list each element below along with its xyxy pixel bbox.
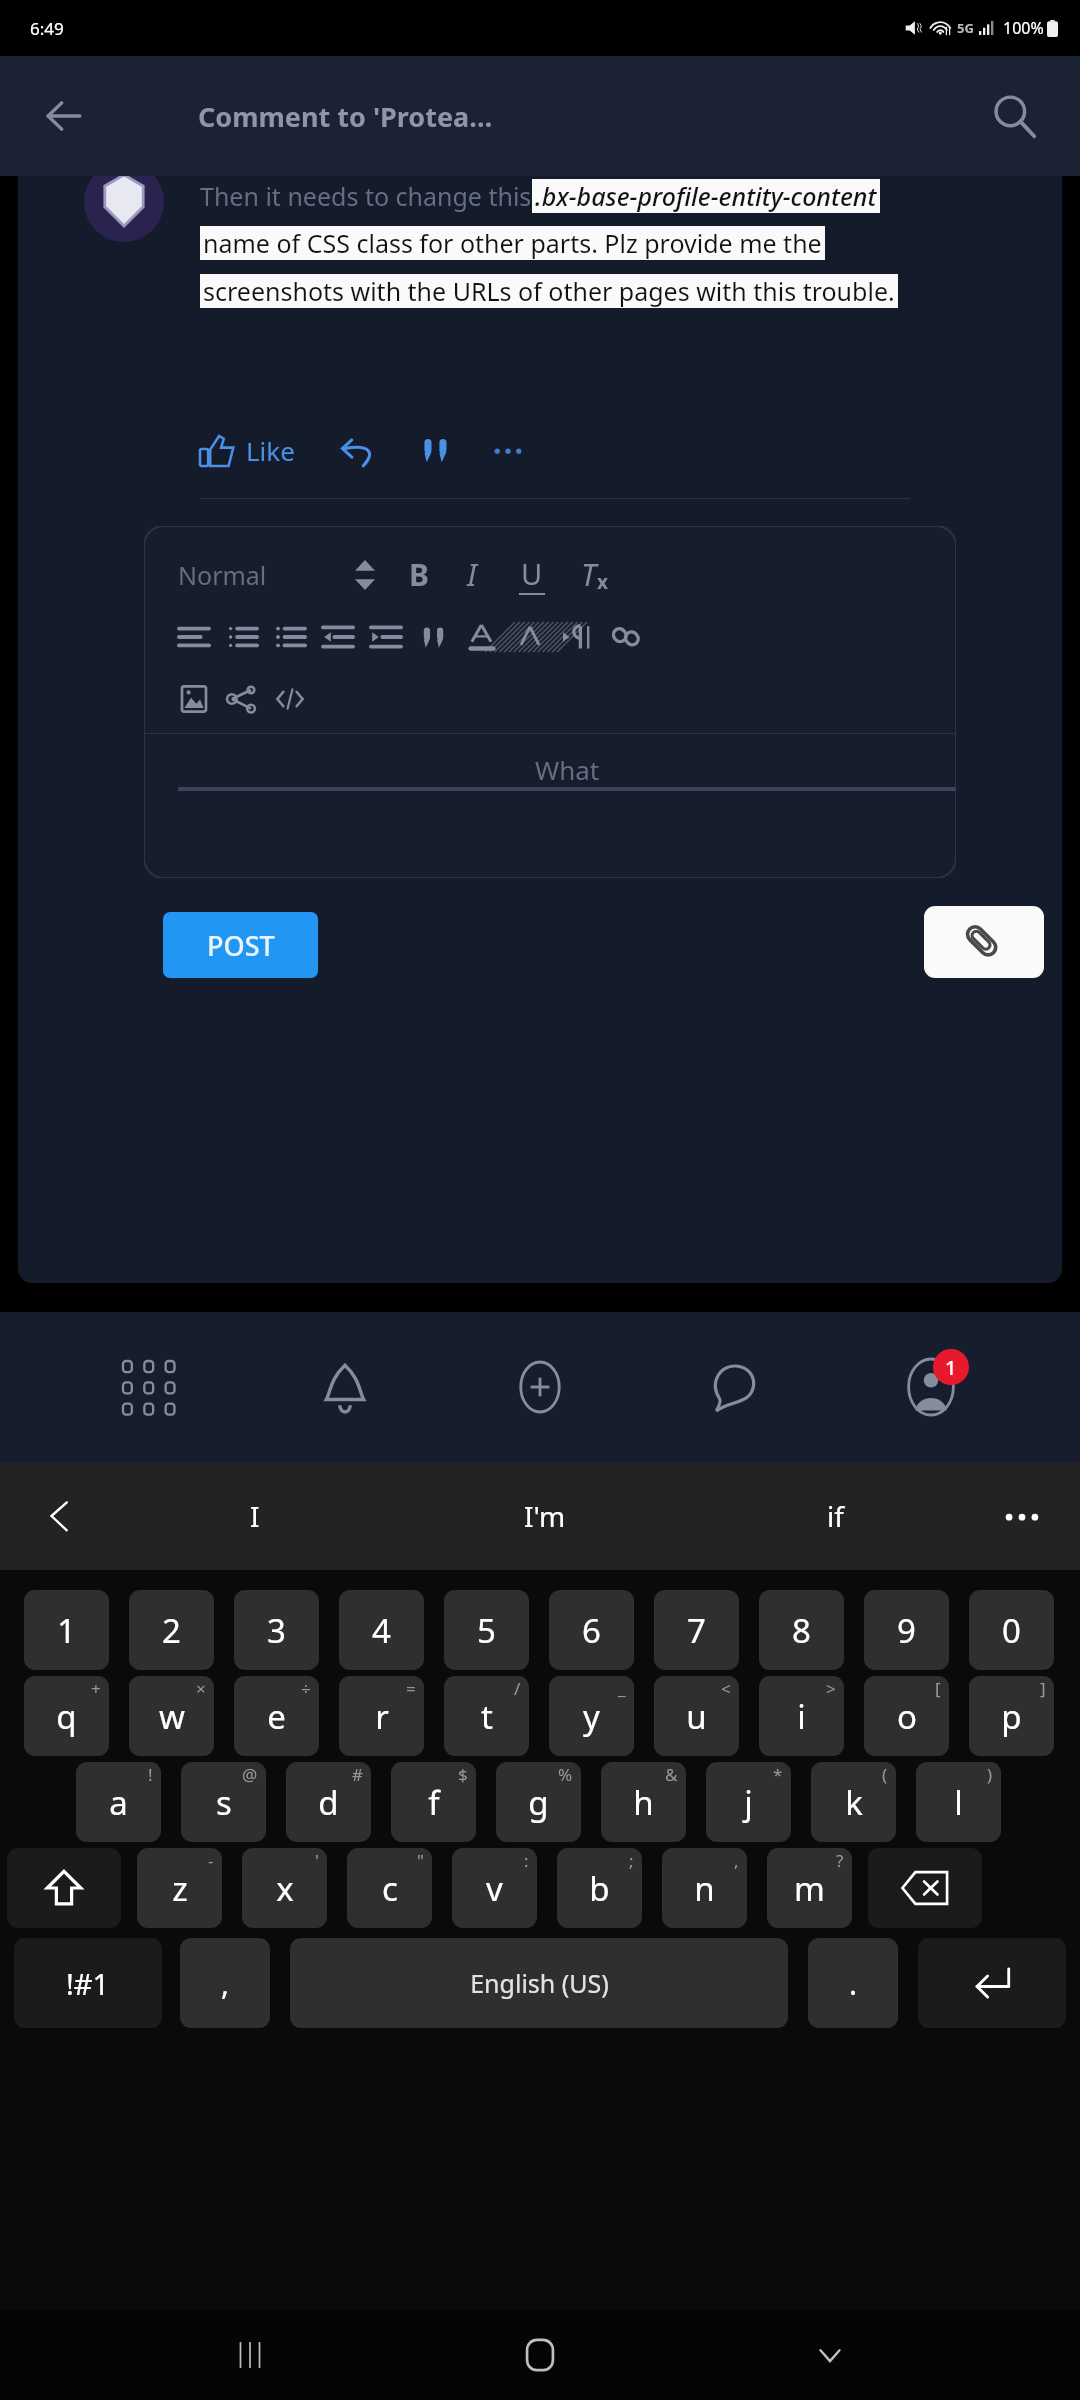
button[interactable]: . [808, 1938, 898, 2028]
button[interactable]: Code [266, 675, 314, 723]
button[interactable]: Previous [30, 1486, 90, 1546]
button[interactable]: Share [218, 675, 266, 723]
button[interactable]: 5 [444, 1590, 529, 1670]
button[interactable]: Link [602, 613, 650, 661]
button[interactable]: Direction [554, 613, 602, 661]
button[interactable]: n [662, 1848, 747, 1928]
button[interactable]: English (US) [290, 1938, 788, 2028]
button[interactable]: POST [163, 912, 318, 978]
button[interactable]: Clear formatting [581, 554, 608, 595]
button[interactable]: More options [992, 1486, 1052, 1546]
staticText: o [897, 1694, 917, 1739]
button[interactable]: j [706, 1762, 791, 1842]
button[interactable]: l [916, 1762, 1001, 1842]
button[interactable]: Text size [355, 560, 375, 590]
staticText: 5 [477, 1608, 496, 1653]
button[interactable]: Shift [7, 1848, 121, 1928]
button[interactable]: Search [984, 86, 1044, 146]
button[interactable]: I [467, 554, 477, 595]
staticText: a [109, 1780, 128, 1825]
button[interactable]: f [391, 1762, 476, 1842]
staticText: p [1001, 1694, 1022, 1739]
button[interactable]: Backspace [868, 1848, 982, 1928]
button[interactable]: Reply [335, 426, 383, 474]
button[interactable]: U [519, 554, 545, 595]
button[interactable]: Back [36, 88, 92, 144]
staticText: z [172, 1866, 188, 1911]
button[interactable]: m [767, 1848, 852, 1928]
staticText: f [428, 1780, 440, 1825]
button[interactable]: Quote [410, 613, 458, 661]
button[interactable]: Like [194, 427, 301, 474]
button[interactable]: g [496, 1762, 581, 1842]
button[interactable]: 6 [549, 1590, 634, 1670]
staticText: if [827, 1497, 844, 1535]
button[interactable]: !#1 [14, 1938, 162, 2028]
button[interactable]: i [759, 1676, 844, 1756]
button[interactable]: Outdent [314, 613, 362, 661]
button[interactable]: 4 [339, 1590, 424, 1670]
button[interactable]: y [549, 1676, 634, 1756]
button[interactable]: t [444, 1676, 529, 1756]
button[interactable]: Messages [689, 1341, 781, 1433]
button[interactable]: a [76, 1762, 161, 1842]
button[interactable]: Account [885, 1341, 977, 1433]
button[interactable]: Bullet list [266, 613, 314, 661]
button[interactable]: Recents [210, 2315, 290, 2395]
button[interactable]: s [181, 1762, 266, 1842]
button[interactable]: 9 [864, 1590, 949, 1670]
button[interactable]: 0 [969, 1590, 1054, 1670]
button[interactable]: k [811, 1762, 896, 1842]
button[interactable]: I [110, 1462, 400, 1570]
button[interactable]: c [347, 1848, 432, 1928]
button[interactable]: x [242, 1848, 327, 1928]
button[interactable]: b [557, 1848, 642, 1928]
staticText: U [521, 554, 543, 593]
button[interactable]: 3 [234, 1590, 319, 1670]
staticText: T [581, 554, 597, 595]
button[interactable]: Notifications [299, 1341, 391, 1433]
button[interactable]: Hide keyboard [790, 2315, 870, 2395]
button[interactable]: Apps [103, 1341, 195, 1433]
staticText: English (US) [470, 1966, 609, 2000]
staticText: d [318, 1780, 339, 1825]
staticText: # [352, 1763, 363, 1786]
button[interactable]: p [969, 1676, 1054, 1756]
button[interactable]: if [690, 1462, 980, 1570]
button[interactable]: d [286, 1762, 371, 1842]
button[interactable]: More [487, 438, 529, 462]
button[interactable]: , [180, 1938, 270, 2028]
button[interactable]: Image [170, 675, 218, 723]
staticText: I'm [524, 1497, 566, 1535]
button[interactable]: w [129, 1676, 214, 1756]
button[interactable]: Attach file [924, 906, 1044, 978]
button[interactable]: Enter [918, 1938, 1066, 2028]
button[interactable]: u [654, 1676, 739, 1756]
button[interactable]: I'm [400, 1462, 690, 1570]
button[interactable]: o [864, 1676, 949, 1756]
button[interactable]: B [409, 554, 429, 595]
button[interactable]: v [452, 1848, 537, 1928]
button[interactable]: Text color [458, 613, 506, 661]
button[interactable]: Add [494, 1341, 586, 1433]
button[interactable]: h [601, 1762, 686, 1842]
staticText: : [524, 1849, 529, 1872]
button[interactable]: 2 [129, 1590, 214, 1670]
button[interactable]: 7 [654, 1590, 739, 1670]
staticText: Normal [178, 558, 267, 592]
staticText: > [826, 1677, 836, 1700]
button[interactable]: Numbered list [218, 613, 266, 661]
button[interactable]: e [234, 1676, 319, 1756]
button[interactable]: q [24, 1676, 109, 1756]
button[interactable]: Quote [413, 427, 459, 473]
button[interactable]: Home [500, 2315, 580, 2395]
button[interactable]: 1 [24, 1590, 109, 1670]
staticText: y [583, 1694, 600, 1739]
button[interactable]: Indent [362, 613, 410, 661]
staticText: !#1 [66, 1964, 110, 2003]
button[interactable]: Align [170, 613, 218, 661]
button[interactable]: z [137, 1848, 222, 1928]
button[interactable]: 8 [759, 1590, 844, 1670]
button[interactable]: Highlight [506, 613, 554, 661]
button[interactable]: r [339, 1676, 424, 1756]
